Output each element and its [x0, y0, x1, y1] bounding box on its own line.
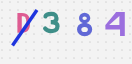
button[interactable]: CAPTCHA image, tap to refresh: [0, 0, 132, 64]
